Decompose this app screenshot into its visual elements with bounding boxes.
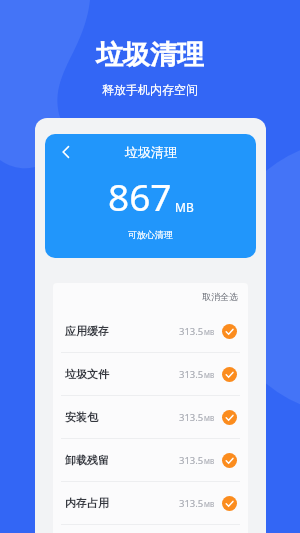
staticText: MB: [204, 371, 215, 380]
staticText: 垃圾清理: [96, 38, 204, 72]
button[interactable]: Back: [53, 139, 79, 165]
button[interactable]: 卸载残留: [53, 439, 248, 481]
staticText: MB: [204, 414, 215, 423]
button[interactable]: 内存占用: [53, 482, 248, 524]
staticText: MB: [204, 457, 215, 466]
staticText: MB: [175, 199, 194, 215]
button[interactable]: 取消全选: [53, 283, 238, 310]
button[interactable]: Selected: [222, 367, 237, 382]
staticText: 垃圾文件: [65, 367, 109, 381]
staticText: 313.5: [179, 497, 204, 510]
button[interactable]: Selected: [222, 453, 237, 468]
button[interactable]: Selected: [222, 496, 237, 511]
button[interactable]: Selected: [222, 324, 237, 339]
staticText: 垃圾清理: [125, 144, 177, 160]
staticText: 313.5: [179, 325, 204, 338]
button[interactable]: 安装包: [53, 396, 248, 438]
staticText: 可放心清理: [128, 229, 173, 240]
staticText: 应用缓存: [65, 324, 109, 338]
button[interactable]: 应用缓存: [53, 310, 248, 352]
staticText: 取消全选: [202, 291, 238, 302]
staticText: 卸载残留: [65, 453, 109, 467]
button[interactable]: 垃圾文件: [53, 353, 248, 395]
staticText: 内存占用: [65, 496, 109, 510]
staticText: 313.5: [179, 411, 204, 424]
button[interactable]: Selected: [222, 410, 237, 425]
staticText: 867: [108, 171, 172, 221]
staticText: 释放手机内存空间: [102, 82, 198, 97]
staticText: 313.5: [179, 454, 204, 467]
staticText: MB: [204, 328, 215, 337]
staticText: MB: [204, 500, 215, 509]
staticText: 313.5: [179, 368, 204, 381]
staticText: 安装包: [65, 410, 98, 424]
